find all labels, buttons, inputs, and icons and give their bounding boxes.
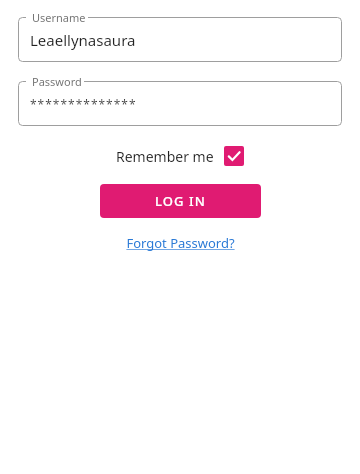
button[interactable]: Leaellynasaura — [18, 17, 342, 62]
other: Remember me checkbox — [224, 146, 244, 166]
staticText: Remember me — [116, 147, 214, 166]
staticText: Forgot Password? — [126, 234, 235, 252]
button[interactable]: LOG IN — [100, 184, 261, 218]
staticText: ************** — [30, 96, 137, 112]
staticText: Password — [32, 74, 82, 89]
staticText: LOG IN — [155, 192, 206, 210]
button[interactable]: Remember me — [112, 144, 248, 168]
button[interactable]: ************** — [18, 81, 342, 126]
staticText: Username — [32, 10, 86, 25]
button[interactable]: Forgot Password? — [122, 232, 239, 254]
staticText: Leaellynasaura — [30, 30, 136, 50]
